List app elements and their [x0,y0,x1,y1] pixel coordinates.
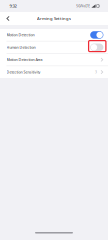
button[interactable]: Back [3,12,12,25]
staticText: Motion Detection [6,32,34,37]
staticText: Human Detection [6,45,35,50]
staticText: 3 [95,70,97,74]
button[interactable]: Human Detection [0,41,108,53]
staticText: Arming Settings [37,16,71,21]
button[interactable]: Motion Detection Area [0,54,108,66]
button[interactable]: Motion Detection [0,29,108,41]
staticText: Motion Detection Area [6,57,42,62]
staticText: 9:32 [9,3,16,9]
staticText: 5G/VoLTE [76,4,90,8]
button[interactable]: Detection Sensitivity [0,66,108,78]
staticText: Detection Sensitivity [6,70,40,74]
